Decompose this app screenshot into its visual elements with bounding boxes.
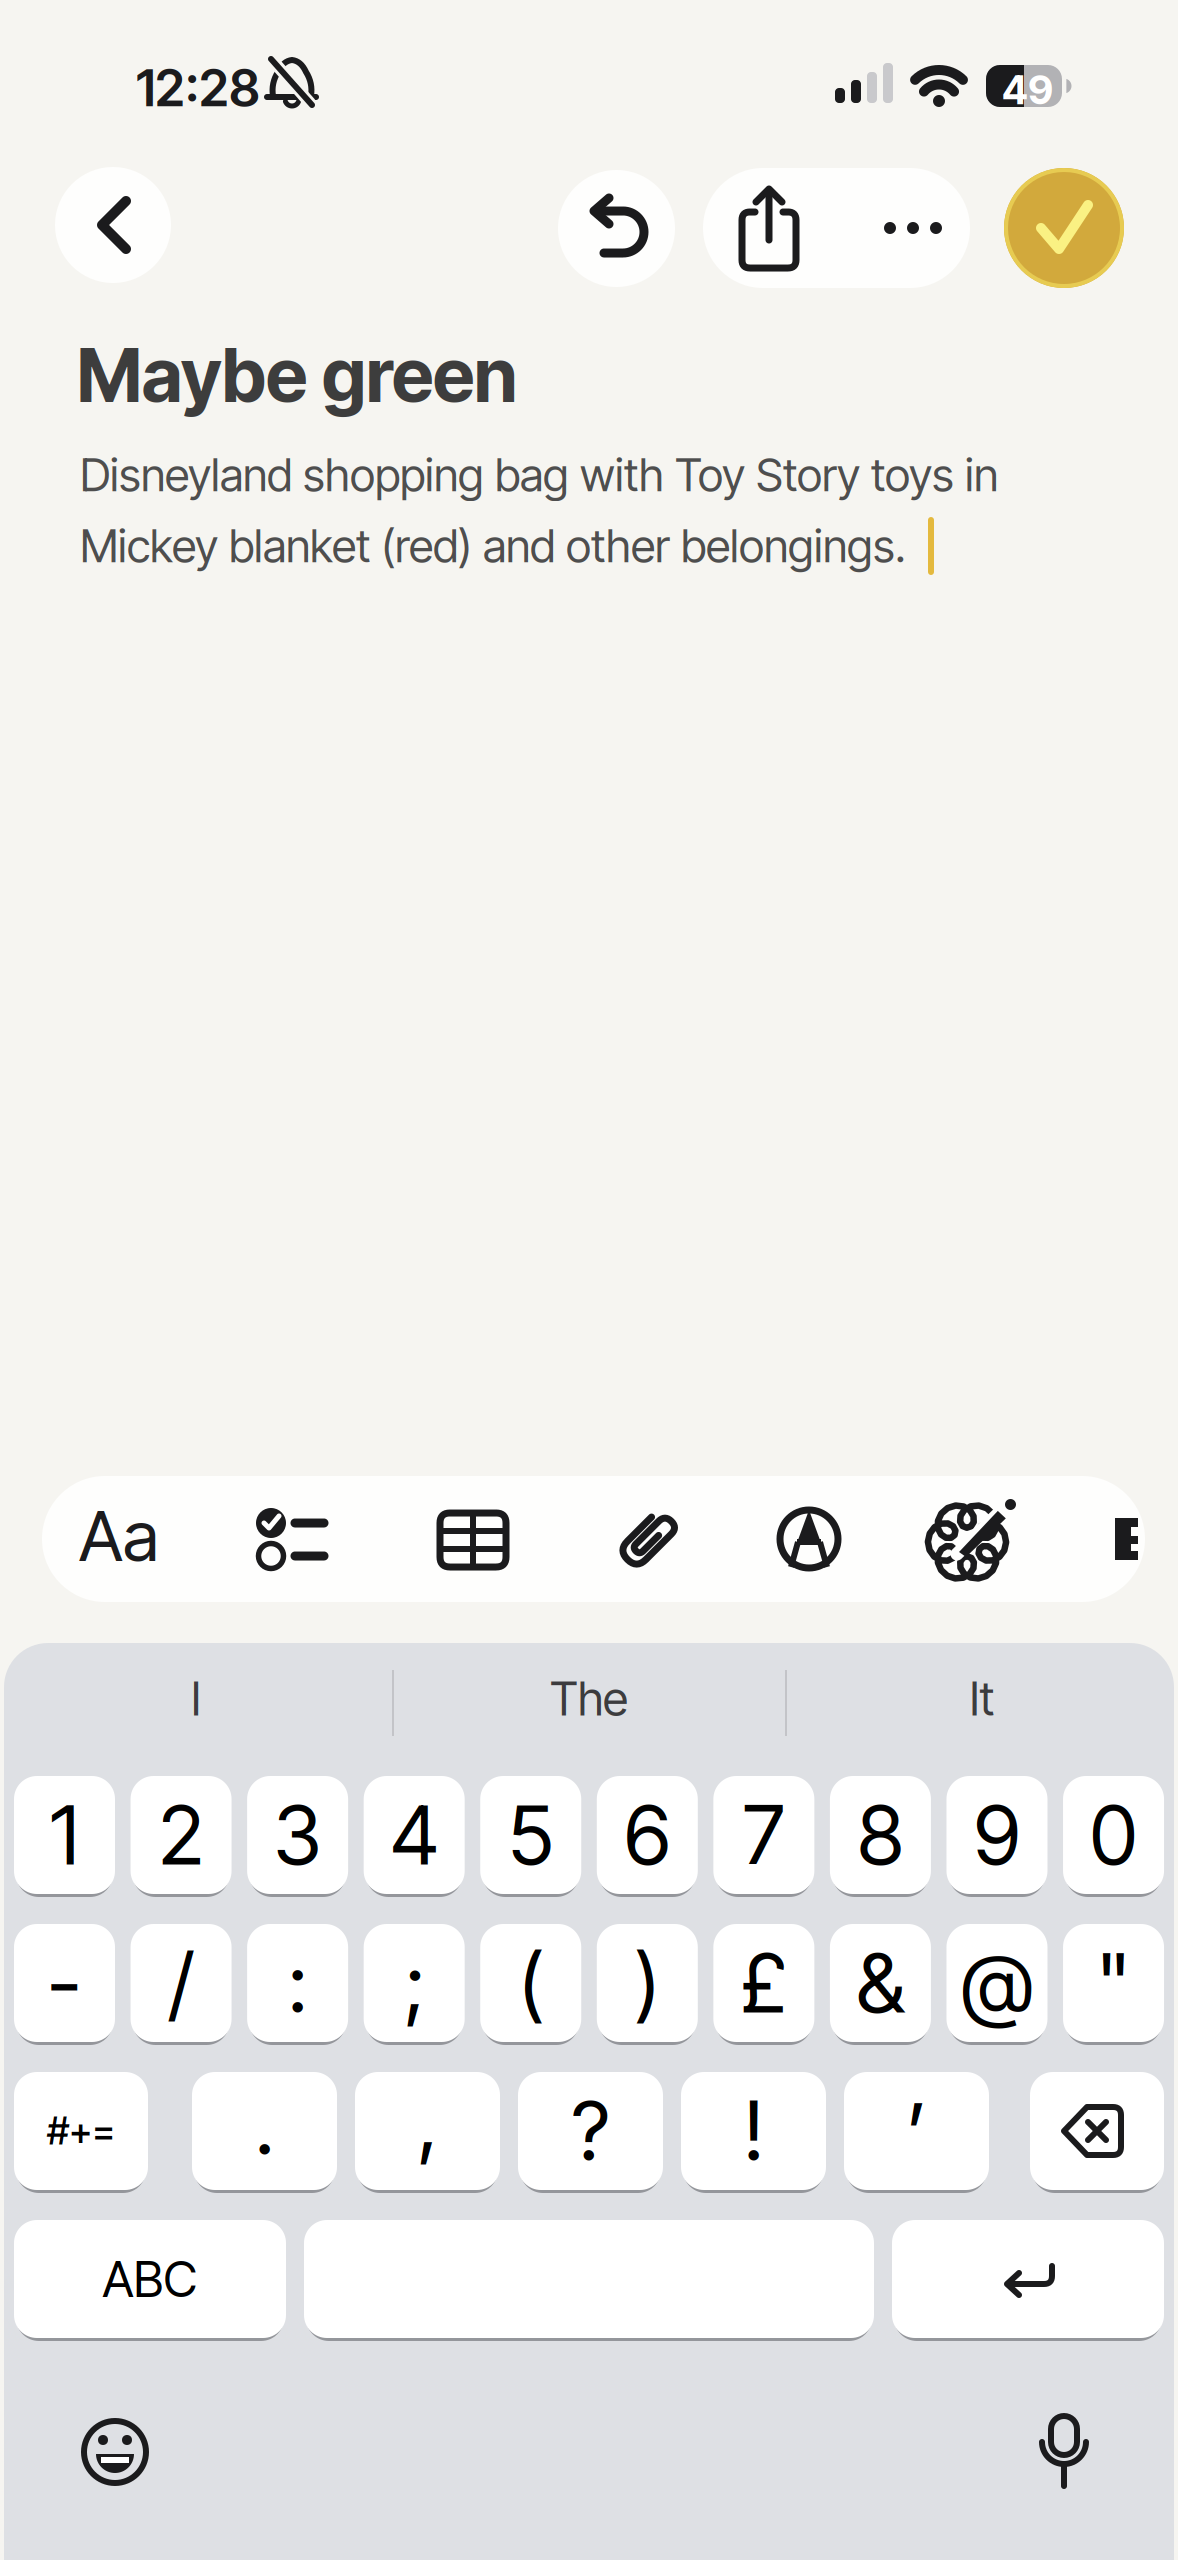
staticText: , xyxy=(417,2073,437,2169)
staticText: 6 xyxy=(624,1787,670,1883)
staticText: Disneyland shopping bag with Toy Story t… xyxy=(80,448,998,501)
staticText: The xyxy=(550,1671,628,1726)
staticText: ! xyxy=(743,2083,763,2179)
staticText: 1 xyxy=(50,1787,79,1883)
staticText: 3 xyxy=(274,1787,322,1883)
staticText: ; xyxy=(404,1935,424,2031)
staticText: 4 xyxy=(390,1787,438,1883)
staticText: " xyxy=(1096,1935,1130,2031)
staticText: 8 xyxy=(857,1787,903,1883)
staticText: 49 xyxy=(1002,66,1053,113)
staticText: ’ xyxy=(906,2085,926,2181)
staticText: I xyxy=(191,1671,201,1726)
staticText: It xyxy=(969,1671,994,1726)
staticText: Mickey blanket (red) and other belonging… xyxy=(80,519,906,572)
staticText: 5 xyxy=(508,1787,553,1883)
staticText: #+= xyxy=(47,2109,115,2153)
staticText: Maybe green xyxy=(77,332,517,418)
staticText: : xyxy=(288,1935,307,2031)
staticText: 7 xyxy=(743,1787,785,1883)
staticText: Aa xyxy=(79,1495,159,1577)
staticText: - xyxy=(47,1935,81,2031)
staticText: ) xyxy=(635,1935,660,2031)
staticText: . xyxy=(255,2077,274,2173)
staticText: ( xyxy=(518,1935,543,2031)
staticText: / xyxy=(169,1935,194,2031)
staticText: @ xyxy=(961,1935,1033,2031)
staticText: & xyxy=(856,1935,904,2031)
staticText: 2 xyxy=(159,1787,204,1883)
staticText: £ xyxy=(740,1935,787,2031)
staticText: ? xyxy=(572,2083,609,2179)
staticText: 9 xyxy=(974,1787,1020,1883)
staticText: 12:28 xyxy=(136,58,260,118)
staticText: 0 xyxy=(1090,1787,1137,1883)
staticText: ABC xyxy=(102,2250,197,2308)
